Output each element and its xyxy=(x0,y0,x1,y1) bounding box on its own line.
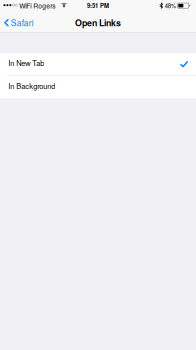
staticText: 9:51 PM xyxy=(87,1,109,10)
button[interactable]: Safari xyxy=(0,12,39,33)
staticText: WiFi Rogers xyxy=(19,1,55,10)
staticText: In Background xyxy=(8,80,55,91)
button[interactable]: In Background xyxy=(0,76,196,98)
staticText: In New Tab xyxy=(8,57,44,68)
button[interactable]: In New Tab xyxy=(0,53,196,75)
staticText: Open Links xyxy=(75,16,121,29)
staticText: 48% xyxy=(165,1,176,10)
staticText: Safari xyxy=(11,17,34,29)
